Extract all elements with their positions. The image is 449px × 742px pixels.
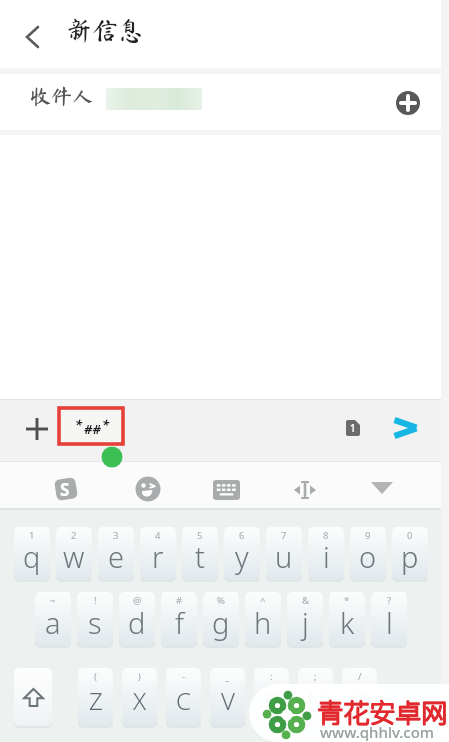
staticText: r — [152, 537, 164, 576]
staticText: t — [195, 537, 205, 576]
staticText: ! — [94, 594, 97, 607]
staticText: ^ — [260, 594, 266, 607]
staticText: 8 — [323, 529, 329, 542]
button[interactable] — [16, 22, 50, 52]
button[interactable]: / — [342, 668, 377, 726]
staticText: S — [60, 478, 70, 501]
staticText: 1 — [350, 421, 356, 435]
button[interactable]: - — [166, 668, 201, 726]
button[interactable]: # — [161, 592, 197, 646]
staticText: www.qhhlv.com — [320, 722, 435, 742]
button[interactable] — [290, 475, 319, 504]
button[interactable]: 0 — [392, 527, 428, 580]
staticText: @ — [133, 594, 142, 607]
button[interactable]: 6 — [224, 527, 260, 580]
button[interactable]: ? — [371, 592, 407, 646]
button[interactable]: _ — [210, 668, 245, 726]
button[interactable]: 收件人 — [0, 74, 449, 130]
staticText: ; — [314, 670, 317, 683]
staticText: : — [270, 670, 273, 683]
staticText: e — [108, 537, 125, 576]
staticText: 0 — [407, 529, 413, 542]
button[interactable] — [14, 668, 52, 726]
staticText: X — [133, 684, 147, 717]
staticText: # — [176, 594, 183, 607]
button[interactable] — [134, 475, 162, 503]
button[interactable]: @ — [119, 592, 155, 646]
staticText: j — [302, 603, 309, 642]
button[interactable] — [22, 414, 52, 444]
button[interactable]: ( — [78, 668, 113, 726]
staticText: ? — [387, 594, 392, 607]
staticText: 3 — [113, 529, 119, 542]
staticText: * — [344, 594, 350, 607]
staticText: 青花安卓网 — [317, 693, 448, 731]
staticText: & — [302, 594, 309, 607]
button[interactable] — [369, 475, 395, 501]
staticText: N — [307, 684, 325, 717]
staticText: ~ — [50, 594, 56, 607]
staticText: q — [23, 537, 41, 576]
button[interactable]: ) — [122, 668, 157, 726]
staticText: d — [128, 603, 146, 642]
button[interactable]: ; — [298, 668, 333, 726]
button[interactable] — [396, 91, 420, 115]
staticText: g — [212, 603, 230, 642]
staticText: s — [88, 603, 102, 642]
staticText: * — [75, 415, 83, 433]
button[interactable]: * — [329, 592, 365, 646]
staticText: i — [323, 537, 330, 576]
staticText: 4 — [155, 529, 161, 542]
button[interactable]: 3 — [98, 527, 134, 580]
staticText: 5 — [197, 529, 203, 542]
staticText: 青花安卓网 — [318, 693, 449, 731]
staticText: f — [175, 603, 184, 642]
staticText: o — [359, 537, 377, 576]
button[interactable]: 1 — [14, 527, 50, 580]
staticText: _ — [225, 670, 230, 683]
staticText: % — [217, 594, 225, 607]
staticText: B — [264, 684, 280, 717]
button[interactable]: & — [287, 592, 323, 646]
staticText: ## — [84, 420, 101, 438]
staticText: ( — [94, 670, 97, 683]
staticText: 2 — [71, 529, 77, 542]
button[interactable]: 9 — [350, 527, 386, 580]
button[interactable]: * — [59, 408, 123, 444]
button[interactable]: 8 — [308, 527, 344, 580]
staticText: 1 — [29, 529, 35, 542]
staticText: h — [254, 603, 272, 642]
button[interactable]: 2 — [56, 527, 92, 580]
staticText: 青花安卓网 — [318, 692, 449, 730]
staticText: l — [386, 603, 393, 642]
staticText: w — [63, 537, 85, 576]
button[interactable] — [212, 475, 241, 504]
staticText: 收件人 — [30, 86, 93, 107]
staticText: a — [45, 603, 61, 642]
button[interactable] — [386, 411, 426, 445]
button[interactable]: ~ — [35, 592, 71, 646]
button[interactable]: ^ — [245, 592, 281, 646]
button[interactable]: % — [203, 592, 239, 646]
staticText: ) — [138, 670, 141, 683]
button[interactable]: 4 — [140, 527, 176, 580]
staticText: 新信息 — [66, 17, 145, 43]
staticText: / — [358, 670, 362, 683]
staticText: Z — [89, 684, 103, 717]
staticText: 9 — [365, 529, 371, 542]
button[interactable]: 7 — [266, 527, 302, 580]
staticText: p — [401, 537, 419, 576]
staticText: * — [102, 415, 110, 433]
button[interactable]: S — [52, 475, 80, 503]
staticText: V — [221, 684, 235, 717]
staticText: 6 — [239, 529, 245, 542]
button[interactable]: : — [254, 668, 289, 726]
staticText: u — [275, 537, 293, 576]
button[interactable]: 5 — [182, 527, 218, 580]
staticText: 7 — [281, 529, 287, 542]
staticText: - — [182, 670, 186, 683]
staticText: k — [340, 603, 355, 642]
staticText: 青花安卓网 — [317, 692, 448, 730]
button[interactable]: ! — [77, 592, 113, 646]
staticText: y — [235, 537, 249, 576]
